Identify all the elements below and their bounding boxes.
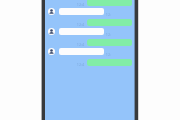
button[interactable]: Contact avatar — [48, 28, 55, 35]
button[interactable]: Contact avatar — [48, 48, 55, 55]
staticText: 12:40 — [105, 32, 112, 36]
button[interactable]: Sent message — [87, 0, 132, 6]
staticText: 12:40 — [76, 42, 85, 46]
button[interactable]: Sent message — [87, 39, 132, 46]
button[interactable]: Contact avatar — [48, 8, 55, 15]
staticText: 12:40 — [105, 12, 112, 16]
staticText: 12:40 — [76, 62, 85, 66]
button[interactable]: Received message — [59, 48, 104, 55]
button[interactable]: Sent message — [87, 19, 132, 26]
button[interactable]: Sent message — [87, 59, 132, 66]
staticText: 12:40 — [76, 22, 85, 26]
staticText: 12:40 — [105, 52, 112, 56]
button[interactable]: Received message — [59, 28, 104, 35]
staticText: 12:40 — [76, 2, 85, 6]
button[interactable]: Received message — [59, 8, 104, 15]
